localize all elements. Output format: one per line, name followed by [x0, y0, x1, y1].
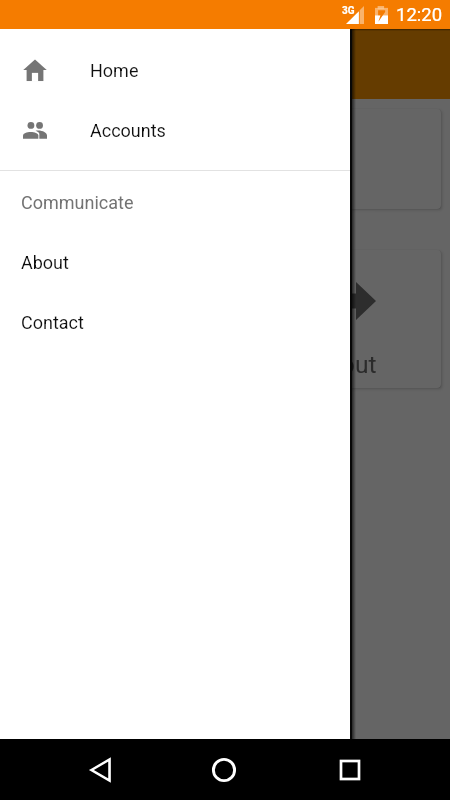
- staticText: About: [21, 252, 69, 273]
- button[interactable]: Recent apps: [332, 752, 368, 788]
- button[interactable]: Home: [0, 40, 350, 100]
- button[interactable]: Home: [206, 752, 242, 788]
- button[interactable]: About: [9, 250, 441, 388]
- button[interactable]: [9, 109, 441, 209]
- staticText: Communicate: [21, 192, 134, 213]
- staticText: About: [311, 350, 377, 379]
- staticText: Contact: [21, 312, 84, 333]
- staticText: 3G: [342, 5, 355, 17]
- staticText: Home: [90, 60, 139, 81]
- button[interactable]: Contact: [0, 292, 350, 352]
- button[interactable]: About: [0, 232, 350, 292]
- button[interactable]: Back: [82, 752, 118, 788]
- staticText: Accounts: [90, 120, 166, 141]
- staticText: 12:20: [396, 4, 443, 26]
- button[interactable]: Accounts: [0, 100, 350, 160]
